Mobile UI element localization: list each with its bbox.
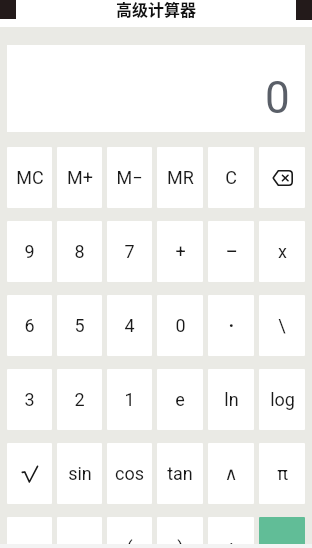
staticText: \ [278,315,286,336]
staticText: , [78,537,82,548]
staticText: M− [116,167,143,188]
staticText: cos [115,463,144,484]
staticText: 5 [74,315,85,336]
staticText: ln [224,389,239,410]
staticText: 8 [74,241,85,262]
button[interactable]: Square root [7,443,52,504]
staticText: sin [68,463,92,484]
staticText: tan [167,463,193,484]
button[interactable]: − [7,517,52,548]
button[interactable]: C [208,147,254,208]
button[interactable]: MC [7,147,52,208]
staticText: 7 [124,241,135,262]
staticText: MR [167,167,194,188]
button[interactable]: e [157,369,203,430]
button[interactable]: 3 [7,369,52,430]
staticText: ( [126,537,133,548]
button[interactable]: MR [157,147,203,208]
button[interactable]: \ [259,295,305,356]
staticText: 1 [124,389,135,410]
button[interactable]: cos [107,443,152,504]
button[interactable]: ) [157,517,203,548]
button[interactable]: 1 [107,369,152,430]
button[interactable]: ÷ [208,517,254,548]
button[interactable]: 4 [107,295,152,356]
button[interactable]: 8 [57,221,102,282]
button[interactable]: log [259,369,305,430]
staticText: ∧ [224,463,238,484]
staticText: ÷ [226,537,237,548]
button[interactable]: + [157,221,203,282]
staticText: log [270,389,295,410]
button[interactable]: ∧ [208,443,254,504]
other: Square root [22,466,38,482]
button[interactable]: − [208,221,254,282]
staticText: = [277,537,287,548]
button[interactable]: 9 [7,221,52,282]
staticText: − [225,239,238,265]
staticText: − [23,535,36,548]
button[interactable]: 5 [57,295,102,356]
other: Backspace [272,170,293,186]
staticText: 0 [175,315,186,336]
button[interactable]: 2 [57,369,102,430]
staticText: 2 [74,389,85,410]
button[interactable]: M− [107,147,152,208]
staticText: 6 [24,315,35,336]
staticText: π [277,463,288,484]
button[interactable]: 0 [157,295,203,356]
staticText: + [175,241,186,262]
staticText: 4 [124,315,135,336]
staticText: M+ [67,167,93,188]
staticText: · [228,311,235,341]
staticText: C [225,167,237,188]
staticText: 9 [24,241,35,262]
staticText: e [175,389,185,410]
button[interactable]: tan [157,443,203,504]
staticText: x [278,241,287,262]
staticText: MC [16,167,44,188]
staticText: ) [177,537,184,548]
button[interactable]: 7 [107,221,152,282]
staticText: 高级计算器 [116,0,197,20]
button[interactable]: ln [208,369,254,430]
button[interactable]: 6 [7,295,52,356]
button[interactable]: ( [107,517,152,548]
button[interactable]: x [259,221,305,282]
staticText: 3 [24,389,35,410]
button[interactable]: = [259,517,305,548]
button[interactable]: M+ [57,147,102,208]
button[interactable]: sin [57,443,102,504]
button[interactable]: 0 [7,45,305,132]
button[interactable]: Backspace [259,147,305,208]
button[interactable]: · [208,295,254,356]
button[interactable]: π [259,443,305,504]
button[interactable]: , [57,517,102,548]
staticText: 0 [265,72,290,124]
